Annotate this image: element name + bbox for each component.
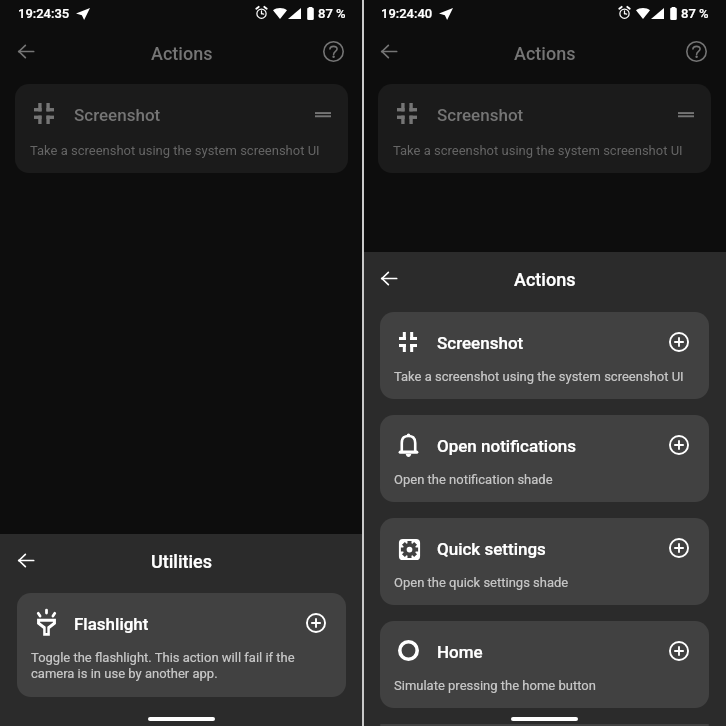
staticText: Simulate pressing the home button bbox=[394, 678, 596, 693]
staticText: 87 % bbox=[681, 6, 709, 21]
staticText: Quick settings bbox=[437, 539, 546, 559]
button[interactable]: Back bbox=[373, 35, 405, 67]
staticText: Screenshot bbox=[74, 105, 161, 125]
staticText: Home bbox=[437, 642, 483, 662]
staticText: Flashlight bbox=[74, 614, 149, 634]
staticText: Utilities bbox=[151, 551, 213, 572]
staticText: Actions bbox=[514, 269, 576, 290]
staticText: Toggle the flashlight. This action will … bbox=[31, 650, 295, 665]
button[interactable]: Add Screenshot bbox=[669, 332, 689, 352]
button[interactable]: Add Quick settings bbox=[669, 538, 689, 558]
button[interactable]: Screenshot bbox=[378, 84, 711, 173]
staticText: Take a screenshot using the system scree… bbox=[394, 369, 684, 384]
staticText: 19:24:35 bbox=[18, 6, 70, 21]
button[interactable]: Back bbox=[10, 35, 42, 67]
staticText: Open the notification shade bbox=[394, 472, 553, 487]
staticText: Take a screenshot using the system scree… bbox=[393, 143, 683, 158]
button[interactable]: Add Home bbox=[669, 641, 689, 661]
button[interactable]: Quick settings bbox=[380, 518, 709, 605]
button[interactable]: Add Flashlight bbox=[306, 613, 326, 633]
staticText: Screenshot bbox=[437, 105, 524, 125]
button[interactable]: Screenshot bbox=[15, 84, 348, 173]
button[interactable]: Flashlight bbox=[17, 593, 346, 697]
staticText: Actions bbox=[151, 43, 213, 64]
staticText: Take a screenshot using the system scree… bbox=[30, 143, 320, 158]
button[interactable]: Back bbox=[10, 544, 42, 576]
button[interactable]: Back bbox=[373, 262, 405, 294]
staticText: Actions bbox=[514, 43, 576, 64]
button[interactable]: Help bbox=[681, 36, 712, 67]
staticText: Open the quick settings shade bbox=[394, 575, 569, 590]
staticText: 19:24:40 bbox=[381, 6, 433, 21]
staticText: camera is in use by another app. bbox=[31, 666, 218, 681]
staticText: Screenshot bbox=[437, 333, 524, 353]
button[interactable]: Screenshot bbox=[380, 312, 709, 399]
button[interactable]: Home bbox=[380, 621, 709, 708]
staticText: Open notifications bbox=[437, 436, 576, 456]
button[interactable]: Help bbox=[318, 36, 349, 67]
button[interactable]: Open notifications bbox=[380, 415, 709, 502]
staticText: 87 % bbox=[318, 6, 346, 21]
button[interactable]: Add Open notifications bbox=[669, 435, 689, 455]
